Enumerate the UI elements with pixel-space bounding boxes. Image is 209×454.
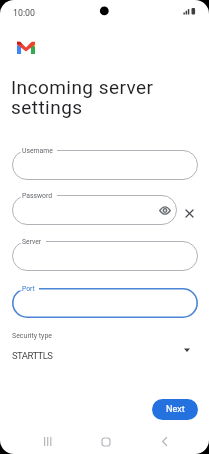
button[interactable]: Server: [12, 241, 198, 271]
staticText: Port: [22, 285, 35, 293]
staticText: Username: [22, 147, 53, 155]
button[interactable]: Clear password: [181, 205, 197, 221]
button[interactable]: Next: [152, 399, 198, 420]
button[interactable]: Show password: [158, 204, 171, 217]
staticText: Password: [22, 192, 53, 200]
button[interactable]: Home: [85, 425, 126, 454]
staticText: Next: [166, 404, 185, 415]
button[interactable]: Port: [12, 288, 198, 318]
button[interactable]: Password: [12, 195, 177, 225]
staticText: 10:00: [13, 8, 35, 18]
button[interactable]: Security type: [0, 330, 209, 362]
staticText: STARTTLS: [12, 350, 53, 361]
staticText: Security type: [12, 332, 53, 340]
button[interactable]: Back: [144, 425, 185, 454]
button[interactable]: Recents: [27, 425, 68, 454]
staticText: Incoming server settings: [11, 76, 154, 118]
button[interactable]: Username: [12, 150, 198, 180]
staticText: Server: [22, 238, 42, 246]
